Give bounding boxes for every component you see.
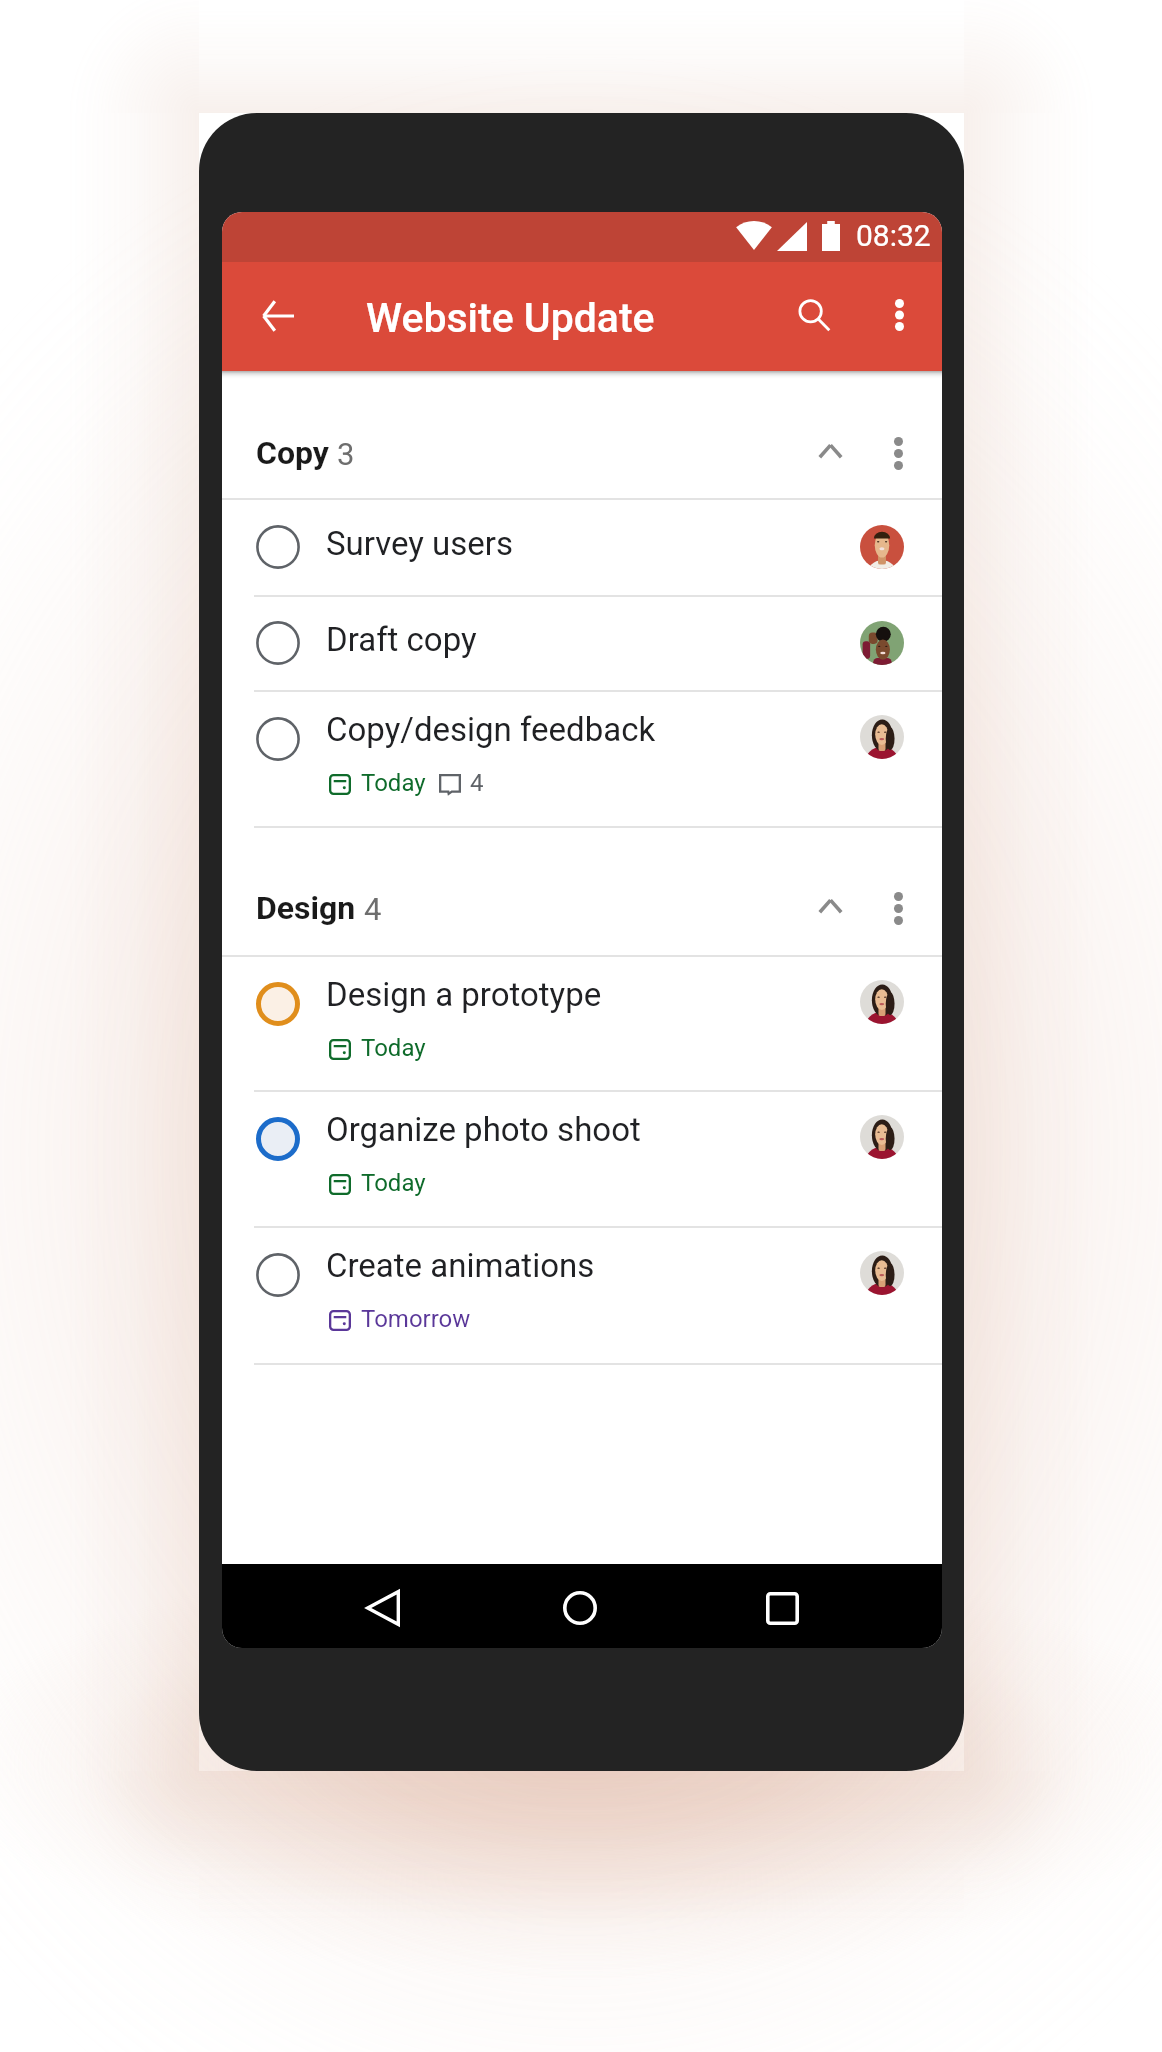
button[interactable]: Section options (856, 866, 940, 950)
staticText: 3 (337, 436, 355, 472)
button[interactable]: Home (540, 1568, 620, 1648)
button[interactable]: Organize photo shoot (222, 1090, 942, 1226)
button[interactable]: Collapse section (788, 864, 872, 948)
button[interactable]: Copy/design feedback (222, 690, 942, 826)
staticText: Today (361, 769, 426, 797)
staticText: Today (361, 1169, 426, 1197)
button[interactable]: Recent apps (742, 1568, 822, 1648)
button[interactable]: Copy (222, 371, 942, 498)
staticText: 4 (364, 891, 382, 927)
staticText: Today (361, 1034, 426, 1062)
staticText: Copy (256, 434, 329, 472)
button[interactable]: Collapse section (788, 409, 872, 493)
button[interactable]: Section options (856, 411, 940, 495)
button[interactable]: Back (238, 276, 318, 356)
button[interactable]: Design a prototype (222, 955, 942, 1090)
staticText: Organize photo shoot (326, 1110, 641, 1149)
staticText: Survey users (326, 524, 514, 563)
button[interactable]: More options (859, 275, 939, 355)
staticText: Design (256, 889, 356, 927)
staticText: Design a prototype (326, 975, 602, 1014)
staticText: Tomorrow (361, 1305, 471, 1333)
button[interactable]: Survey users (222, 498, 942, 595)
staticText: Draft copy (326, 620, 477, 659)
button[interactable]: Back (343, 1568, 423, 1648)
staticText: Website Update (366, 294, 655, 342)
staticText: 4 (470, 769, 484, 797)
button[interactable]: Draft copy (222, 595, 942, 690)
staticText: Copy/design feedback (326, 710, 656, 749)
staticText: 08:32 (856, 218, 931, 253)
button[interactable]: Create animations (222, 1226, 942, 1363)
staticText: Create animations (326, 1246, 595, 1285)
button[interactable]: Design (222, 826, 942, 955)
button[interactable]: Search (774, 275, 854, 355)
